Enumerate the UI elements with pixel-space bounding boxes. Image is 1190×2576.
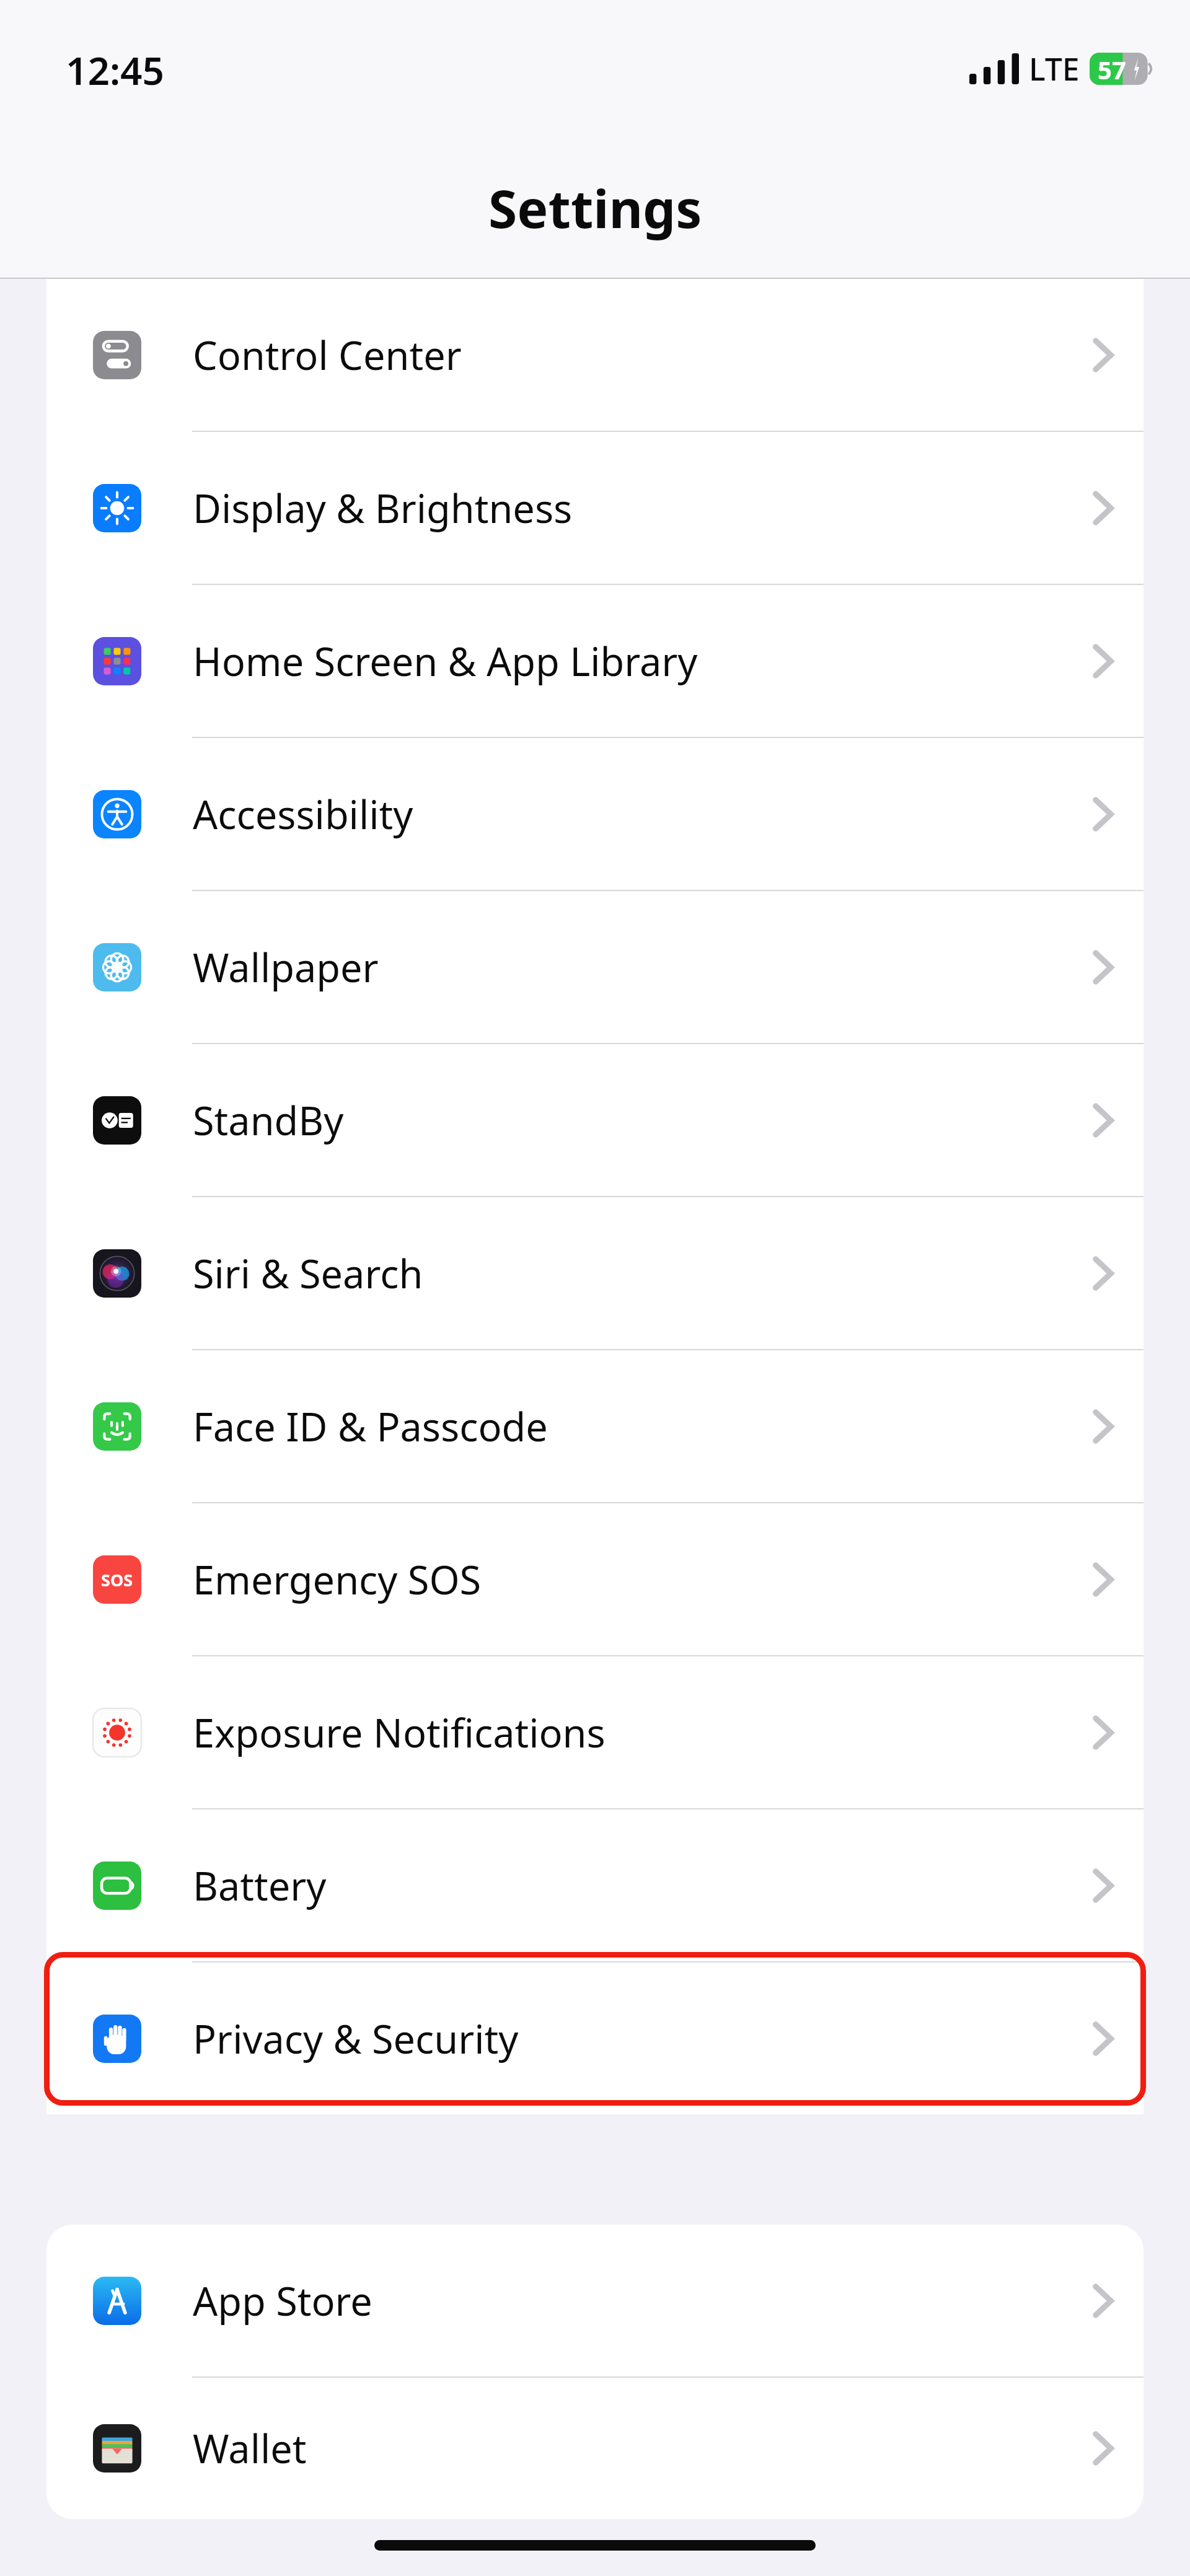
staticText: StandBy (193, 1094, 1093, 1147)
staticText: Exposure Notifications (193, 1706, 1093, 1759)
staticText: Siri & Search (193, 1247, 1093, 1300)
staticText: Control Center (193, 328, 1093, 382)
button[interactable]: Wallpaper (46, 891, 1144, 1043)
button[interactable]: Control Center (46, 279, 1144, 431)
staticText: SOS (101, 1568, 133, 1591)
staticText: Home Screen & App Library (193, 635, 1093, 688)
staticText: 57 (1098, 53, 1126, 85)
button[interactable]: Privacy & Security (46, 1963, 1144, 2114)
button[interactable]: Battery (46, 1809, 1144, 1961)
staticText: Emergency SOS (193, 1553, 1093, 1606)
staticText: App Store (193, 2274, 1093, 2328)
button[interactable]: Home Screen & App Library (46, 585, 1144, 737)
staticText: Privacy & Security (193, 2012, 1093, 2065)
button[interactable]: App Store (46, 2225, 1144, 2376)
staticText: Settings (488, 172, 702, 243)
button[interactable]: StandBy (46, 1044, 1144, 1196)
staticText: LTE (1029, 48, 1080, 90)
button[interactable]: Face ID & Passcode (46, 1350, 1144, 1502)
button[interactable]: SOS (46, 1503, 1144, 1655)
button[interactable]: Exposure Notifications (46, 1656, 1144, 1808)
staticText: Wallet (193, 2422, 1093, 2475)
staticText: Accessibility (193, 788, 1093, 841)
button[interactable]: Accessibility (46, 738, 1144, 890)
button[interactable]: Display & Brightness (46, 432, 1144, 584)
button[interactable]: Wallet (46, 2378, 1144, 2519)
staticText: Display & Brightness (193, 481, 1093, 535)
staticText: 12:45 (66, 44, 164, 96)
staticText: Battery (193, 1859, 1093, 1912)
staticText: Wallpaper (193, 941, 1093, 994)
button[interactable]: Siri & Search (46, 1197, 1144, 1349)
staticText: Face ID & Passcode (193, 1400, 1093, 1453)
